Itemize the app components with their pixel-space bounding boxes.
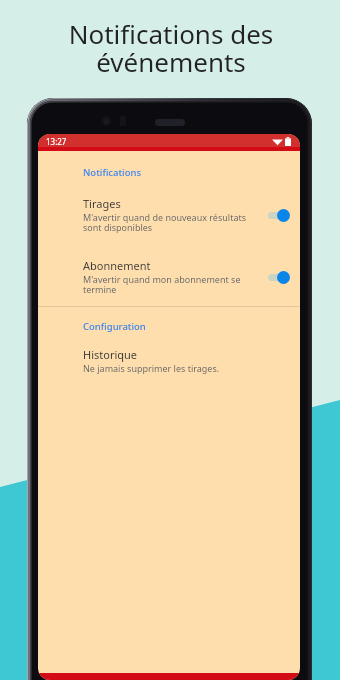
- staticText: Tirages: [83, 196, 121, 211]
- staticText: 13:27: [46, 136, 67, 147]
- button[interactable]: Configuration: [38, 319, 300, 334]
- staticText: Notifications: [83, 166, 142, 179]
- button[interactable]: Notifications: [38, 165, 300, 180]
- button[interactable]: Toggle Abonnement: [268, 271, 290, 284]
- staticText: M'avertir quand de nouveaux résultats so…: [83, 211, 247, 234]
- staticText: Configuration: [83, 320, 146, 333]
- staticText: Abonnement: [83, 258, 151, 273]
- button[interactable]: Historique: [38, 346, 300, 375]
- button[interactable]: Abonnement: [38, 257, 300, 297]
- button[interactable]: Toggle Tirages: [268, 209, 290, 222]
- staticText: Ne jamais supprimer les tirages.: [83, 362, 220, 374]
- button[interactable]: Tirages: [38, 195, 300, 235]
- staticText: Historique: [83, 347, 138, 362]
- staticText: M'avertir quand mon abonnement se termin…: [83, 273, 241, 296]
- staticText: Notifications des événements: [1, 16, 340, 80]
